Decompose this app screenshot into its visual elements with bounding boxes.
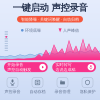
staticText: 人声峰值 [63, 28, 79, 33]
staticText: 自动存档 [29, 89, 45, 94]
button[interactable]: 自动存档 [25, 77, 50, 94]
staticText: 声控录音 [4, 89, 20, 94]
staticText: 实时转写 [55, 62, 71, 67]
staticText: 录音管理 [54, 89, 70, 94]
staticText: 开始录音 [7, 62, 23, 67]
button[interactable]: 声控录音 [0, 77, 25, 94]
button[interactable]: 开始录音 [4, 62, 48, 72]
staticText: 环境底噪 [25, 28, 41, 33]
button[interactable]: 隐私保护 [75, 77, 100, 94]
staticText: 声控自动触发 [7, 67, 31, 72]
button[interactable]: 实时转写 [52, 62, 96, 72]
button[interactable]: 录音管理 [50, 77, 75, 94]
staticText: 边说边成稿 [55, 67, 75, 72]
staticText: 隐私保护 [79, 89, 95, 94]
staticText: 一键启动 声控录音 [12, 2, 87, 13]
staticText: 智能降噪 · 关键词唤醒 · 自动归档 [21, 17, 79, 22]
